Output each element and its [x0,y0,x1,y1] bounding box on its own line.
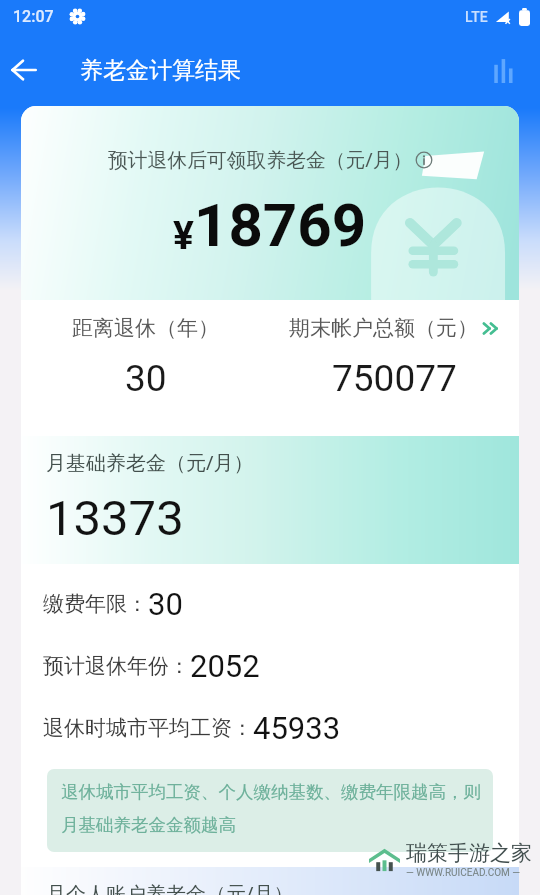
staticText: 30 [148,586,183,622]
staticText: 距离退休（年） [72,315,219,341]
staticText: LTE [465,9,488,25]
staticText: 18769 [194,190,367,260]
staticText: 缴费年限： [43,591,148,617]
button[interactable]: Back [0,42,47,98]
staticText: 750077 [332,357,457,400]
staticText: 退休城市平均工资、个人缴纳基数、缴费年限越高，则月基础养老金金额越高 [61,781,487,836]
staticText: — WWW.RUICEAD.COM — [406,867,521,879]
staticText: 预计退休后可领取养老金（元/月） [108,146,413,173]
button[interactable]: Statistics [488,42,518,98]
staticText: 月基础养老金（元/月） [46,449,254,476]
staticText: 瑞策手游之家 [406,840,532,866]
staticText: 期末帐户总额（元） [289,315,478,341]
staticText: 30 [125,357,167,400]
staticText: 月个人账户养老金（元/月） [46,880,294,895]
staticText: 养老金计算结果 [80,56,241,85]
staticText: 2052 [190,648,260,684]
staticText: ¥ [173,213,194,259]
staticText: 13373 [46,490,184,547]
staticText: 退休时城市平均工资： [43,715,253,741]
staticText: 12:07 [13,7,54,26]
staticText: 预计退休年份： [43,653,190,679]
staticText: 45933 [253,710,341,746]
